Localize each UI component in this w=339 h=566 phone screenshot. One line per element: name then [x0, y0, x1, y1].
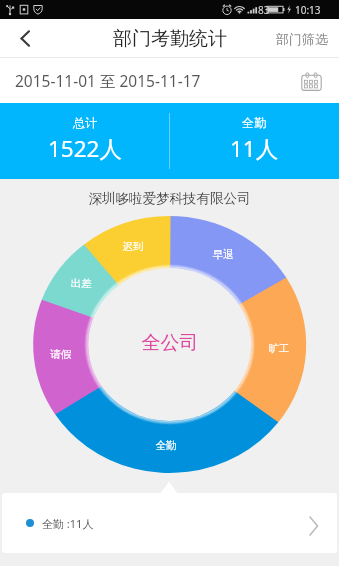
staticText: 部门筛选	[276, 31, 328, 47]
button[interactable]: 全勤	[169, 103, 339, 179]
staticText: 出差	[67, 277, 95, 290]
button[interactable]: 2015-11-01 至 2015-11-17	[0, 58, 339, 103]
staticText: 全勤 :11人	[42, 516, 94, 531]
button[interactable]: 返回	[0, 20, 48, 58]
button[interactable]: 部门筛选	[264, 21, 339, 57]
staticText: 旷工	[265, 342, 293, 355]
staticText: 11人	[230, 133, 279, 164]
staticText: 10:13	[295, 3, 321, 17]
staticText: 全公司	[130, 331, 210, 355]
staticText: 1522人	[48, 133, 122, 164]
staticText: 深圳哆啦爱梦科技有限公司	[0, 190, 339, 207]
staticText: 83	[258, 3, 270, 17]
button[interactable]: 选择日期	[301, 72, 322, 91]
staticText: 迟到	[119, 240, 147, 253]
button[interactable]: 全勤 :11人	[2, 493, 337, 553]
staticText: 2015-11-01 至 2015-11-17	[15, 70, 201, 91]
staticText: 请假	[47, 348, 75, 361]
staticText: 部门考勤统计	[113, 27, 227, 51]
staticText: 早退	[209, 248, 237, 261]
button[interactable]: 总计	[0, 103, 169, 179]
staticText: 全勤	[152, 439, 180, 452]
staticText: 总计	[73, 115, 97, 130]
staticText: 全勤	[242, 115, 266, 130]
